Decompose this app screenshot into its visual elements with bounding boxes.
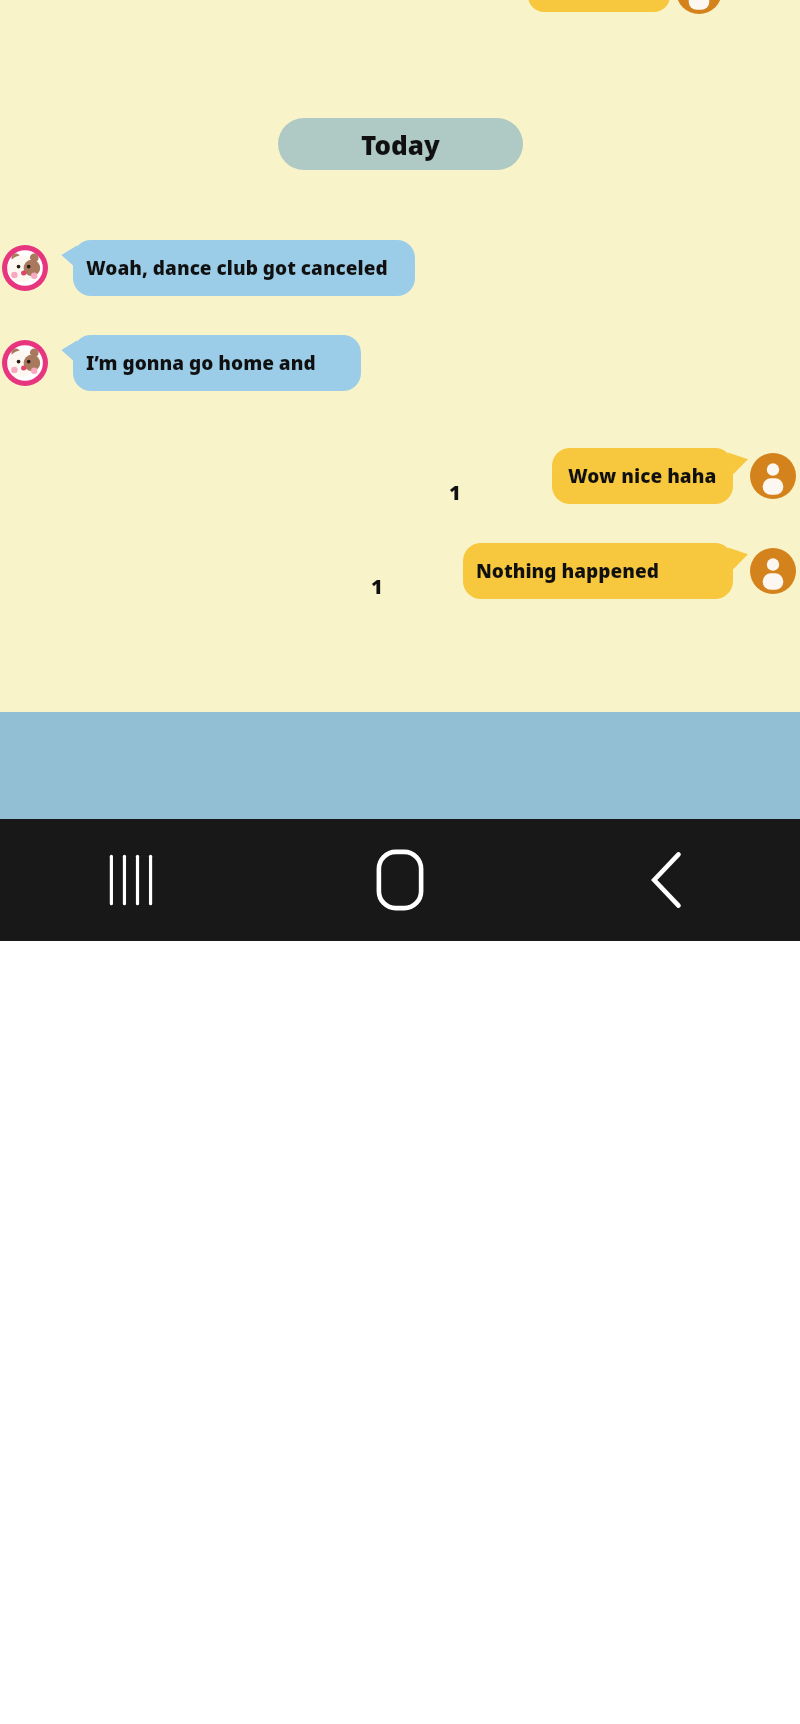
- button[interactable]: Hamster profile: [2, 245, 48, 291]
- button[interactable]: Home: [266, 819, 533, 941]
- button[interactable]: Profile: [676, 0, 722, 14]
- button[interactable]: Today: [278, 118, 523, 170]
- staticText: Wow nice haha: [568, 463, 717, 489]
- button[interactable]: Profile: [750, 453, 796, 499]
- button[interactable]: I’m gonna go home and rest well~: [61, 335, 349, 391]
- staticText: Woah, dance club got canceled today!: [86, 255, 402, 281]
- button[interactable]: Woah, dance club got canceled today!: [61, 240, 403, 296]
- button[interactable]: Profile: [750, 548, 796, 594]
- staticText: Nothing happened today, right?: [476, 558, 720, 584]
- button[interactable]: Nothing happened today, right?: [463, 543, 733, 599]
- button[interactable]: Wow nice haha: [552, 448, 733, 504]
- staticText: 1: [371, 573, 383, 600]
- button[interactable]: [528, 0, 670, 12]
- staticText: I’m gonna go home and rest well~: [86, 350, 348, 376]
- staticText: Today: [361, 127, 440, 162]
- button[interactable]: Hamster profile: [2, 340, 48, 386]
- button[interactable]: Back: [533, 819, 800, 941]
- staticText: 1: [449, 479, 461, 506]
- button[interactable]: Recents: [0, 819, 266, 941]
